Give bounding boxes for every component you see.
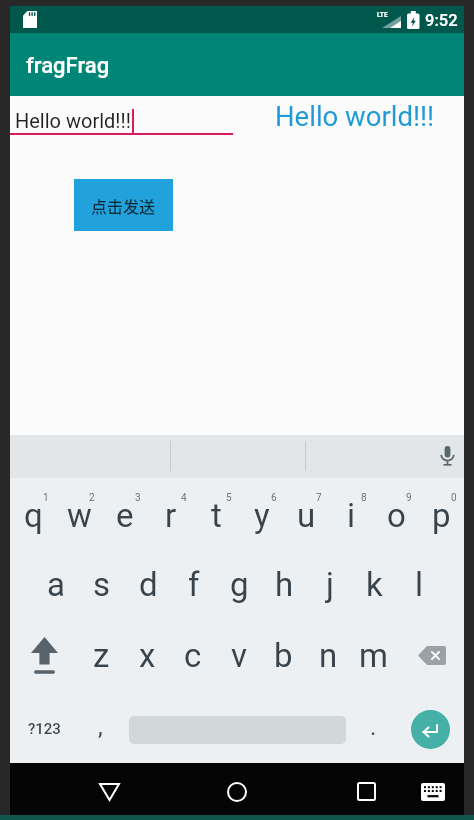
staticText: h xyxy=(275,565,294,604)
button[interactable]: 3 xyxy=(102,478,148,549)
button[interactable]: 4 xyxy=(148,478,194,549)
staticText: i xyxy=(347,496,356,535)
staticText: t xyxy=(211,496,222,535)
staticText: z xyxy=(93,636,110,675)
staticText: 6 xyxy=(271,492,277,504)
staticText: LTE xyxy=(377,11,388,19)
staticText: b xyxy=(274,636,293,675)
button[interactable]: v xyxy=(216,620,261,691)
staticText: n xyxy=(319,636,338,675)
button[interactable]: 5 xyxy=(194,478,239,549)
button[interactable] xyxy=(123,691,351,762)
button[interactable] xyxy=(396,620,464,691)
staticText: o xyxy=(387,496,406,535)
staticText: j xyxy=(326,565,334,604)
button[interactable]: Hello world!!! xyxy=(10,100,233,136)
button[interactable]: h xyxy=(262,549,307,620)
button[interactable] xyxy=(88,770,131,813)
button[interactable]: 0 xyxy=(419,478,464,549)
button[interactable]: z xyxy=(78,620,124,691)
button[interactable]: . xyxy=(351,691,396,762)
button[interactable]: 6 xyxy=(239,478,284,549)
button[interactable]: 2 xyxy=(56,478,102,549)
button[interactable]: g xyxy=(217,549,262,620)
button[interactable]: l xyxy=(397,549,442,620)
button[interactable]: a xyxy=(33,549,79,620)
button[interactable]: 1 xyxy=(10,478,56,549)
staticText: 2 xyxy=(89,492,95,504)
staticText: f xyxy=(188,565,200,604)
staticText: 3 xyxy=(135,492,141,504)
button[interactable] xyxy=(215,770,258,813)
staticText: 1 xyxy=(43,492,49,504)
button[interactable] xyxy=(345,770,388,813)
staticText: ?123 xyxy=(28,720,61,738)
staticText: d xyxy=(139,565,158,604)
button[interactable] xyxy=(396,691,464,762)
button[interactable]: m xyxy=(351,620,396,691)
staticText: 9:52 xyxy=(425,11,458,30)
staticText: g xyxy=(230,565,249,604)
button[interactable]: 点击发送 xyxy=(74,179,173,231)
button[interactable]: k xyxy=(352,549,397,620)
staticText: 0 xyxy=(451,492,457,504)
button[interactable]: x xyxy=(124,620,170,691)
staticText: y xyxy=(254,496,270,535)
staticText: m xyxy=(359,636,388,675)
staticText: u xyxy=(297,496,316,535)
button[interactable]: , xyxy=(78,691,123,762)
staticText: Hello world!!! xyxy=(15,109,131,132)
button[interactable]: n xyxy=(306,620,351,691)
staticText: Hello world!!! xyxy=(275,100,435,132)
staticText: 7 xyxy=(316,492,322,504)
staticText: 9 xyxy=(406,492,412,504)
button[interactable]: j xyxy=(307,549,352,620)
staticText: q xyxy=(24,496,43,535)
staticText: fragFrag xyxy=(26,53,110,79)
staticText: k xyxy=(366,565,383,604)
staticText: 5 xyxy=(226,492,232,504)
staticText: , xyxy=(98,713,103,741)
staticText: p xyxy=(432,496,451,535)
button[interactable]: s xyxy=(79,549,125,620)
staticText: v xyxy=(231,636,247,675)
staticText: l xyxy=(415,565,424,604)
staticText: w xyxy=(67,496,92,535)
staticText: c xyxy=(184,636,202,675)
button[interactable]: 9 xyxy=(374,478,419,549)
staticText: . xyxy=(370,713,377,741)
button[interactable]: 7 xyxy=(284,478,329,549)
staticText: r xyxy=(165,496,177,535)
button[interactable]: ?123 xyxy=(10,691,78,762)
staticText: 点击发送 xyxy=(91,194,156,217)
staticText: x xyxy=(139,636,156,675)
button[interactable] xyxy=(10,620,78,691)
staticText: 4 xyxy=(181,492,187,504)
button[interactable]: f xyxy=(171,549,217,620)
button[interactable]: d xyxy=(125,549,171,620)
button[interactable] xyxy=(412,770,454,813)
staticText: a xyxy=(47,565,65,604)
button[interactable]: c xyxy=(170,620,216,691)
staticText: 8 xyxy=(361,492,367,504)
button[interactable]: 8 xyxy=(329,478,374,549)
staticText: e xyxy=(116,496,134,535)
button[interactable]: b xyxy=(261,620,306,691)
staticText: s xyxy=(93,565,111,604)
button[interactable] xyxy=(430,437,464,477)
